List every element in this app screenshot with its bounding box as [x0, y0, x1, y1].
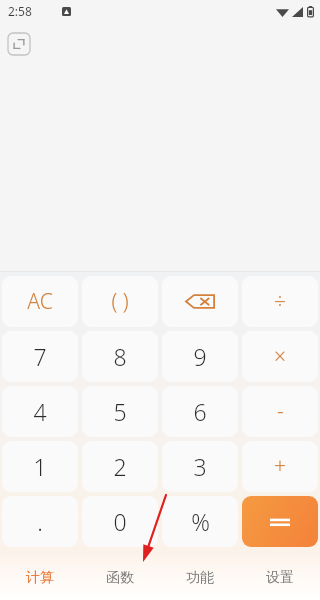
button[interactable]: 设置 [240, 556, 320, 600]
staticText: 2:58 [8, 3, 32, 19]
staticText: AC [27, 287, 53, 316]
button[interactable]: Equals [242, 496, 318, 547]
button[interactable]: 3 [162, 441, 238, 492]
button[interactable]: 8 [82, 331, 158, 382]
button[interactable]: . [2, 496, 78, 547]
button[interactable]: 5 [82, 386, 158, 437]
button[interactable]: 1 [2, 441, 78, 492]
staticText: 9 [193, 341, 207, 372]
staticText: % [191, 506, 210, 537]
staticText: 1 [33, 451, 47, 482]
button[interactable]: 函数 [80, 556, 160, 600]
staticText: 函数 [106, 569, 134, 587]
button[interactable]: Expand display [8, 33, 30, 55]
button[interactable]: AC [2, 276, 78, 327]
button[interactable]: 0 [82, 496, 158, 547]
button[interactable]: 计算 [0, 556, 80, 600]
button[interactable]: 6 [162, 386, 238, 437]
button[interactable]: 9 [162, 331, 238, 382]
button[interactable]: - [242, 386, 318, 437]
staticText: 6 [193, 396, 207, 427]
button[interactable]: 7 [2, 331, 78, 382]
staticText: 0 [113, 506, 127, 537]
button[interactable]: 2 [82, 441, 158, 492]
staticText: 4 [33, 396, 47, 427]
button[interactable]: 功能 [160, 556, 240, 600]
staticText: - [277, 397, 284, 426]
staticText: ÷ [274, 287, 286, 316]
staticText: 8 [113, 341, 127, 372]
staticText: 计算 [26, 569, 54, 587]
button[interactable]: + [242, 441, 318, 492]
button[interactable]: ÷ [242, 276, 318, 327]
button[interactable]: % [162, 496, 238, 547]
staticText: 2 [113, 451, 127, 482]
button[interactable]: × [242, 331, 318, 382]
staticText: 设置 [266, 569, 294, 587]
button[interactable]: ( ) [82, 276, 158, 327]
staticText: ( ) [111, 287, 129, 316]
staticText: + [274, 452, 286, 481]
staticText: 功能 [186, 569, 214, 587]
staticText: 7 [33, 341, 47, 372]
staticText: 5 [113, 396, 127, 427]
staticText: × [274, 342, 286, 371]
staticText: . [37, 506, 43, 537]
staticText: 3 [193, 451, 207, 482]
button[interactable]: Backspace [162, 276, 238, 327]
button[interactable]: 4 [2, 386, 78, 437]
